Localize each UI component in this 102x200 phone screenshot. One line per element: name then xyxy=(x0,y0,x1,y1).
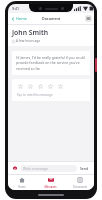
button[interactable]: Home xyxy=(8,15,30,22)
button[interactable]: Documents xyxy=(65,175,94,190)
staticText: A few hours ago xyxy=(16,39,41,43)
staticText: Send xyxy=(80,166,89,171)
button[interactable]: Messages xyxy=(36,175,65,190)
staticText: Messages xyxy=(44,185,57,188)
button[interactable]: Add attachment xyxy=(12,165,18,171)
staticText: Tap to rate this message xyxy=(17,93,53,97)
button[interactable]: Home xyxy=(8,175,36,190)
button[interactable]: Send xyxy=(79,165,90,172)
staticText: Write a message xyxy=(23,167,48,171)
staticText: Hi James, I'd be really grateful if you … xyxy=(16,55,86,71)
button[interactable]: Menu xyxy=(83,13,94,24)
staticText: Home xyxy=(16,16,27,21)
staticText: Document xyxy=(42,16,61,21)
button[interactable]: Rate 5 stars xyxy=(57,83,64,90)
staticText: John Smith xyxy=(12,28,49,37)
staticText: Home xyxy=(18,185,26,188)
staticText: 9:41 xyxy=(12,6,20,11)
button[interactable]: Rate 2 stars xyxy=(27,83,34,90)
button[interactable]: Rate 4 stars xyxy=(47,83,54,90)
button[interactable]: Rate 1 stars xyxy=(17,83,24,90)
button[interactable]: Hi James, I'd be really grateful if you … xyxy=(12,51,90,75)
staticText: Documents xyxy=(73,185,87,188)
button[interactable]: Write a message xyxy=(20,165,77,172)
button[interactable]: Rate 3 stars xyxy=(37,83,44,90)
